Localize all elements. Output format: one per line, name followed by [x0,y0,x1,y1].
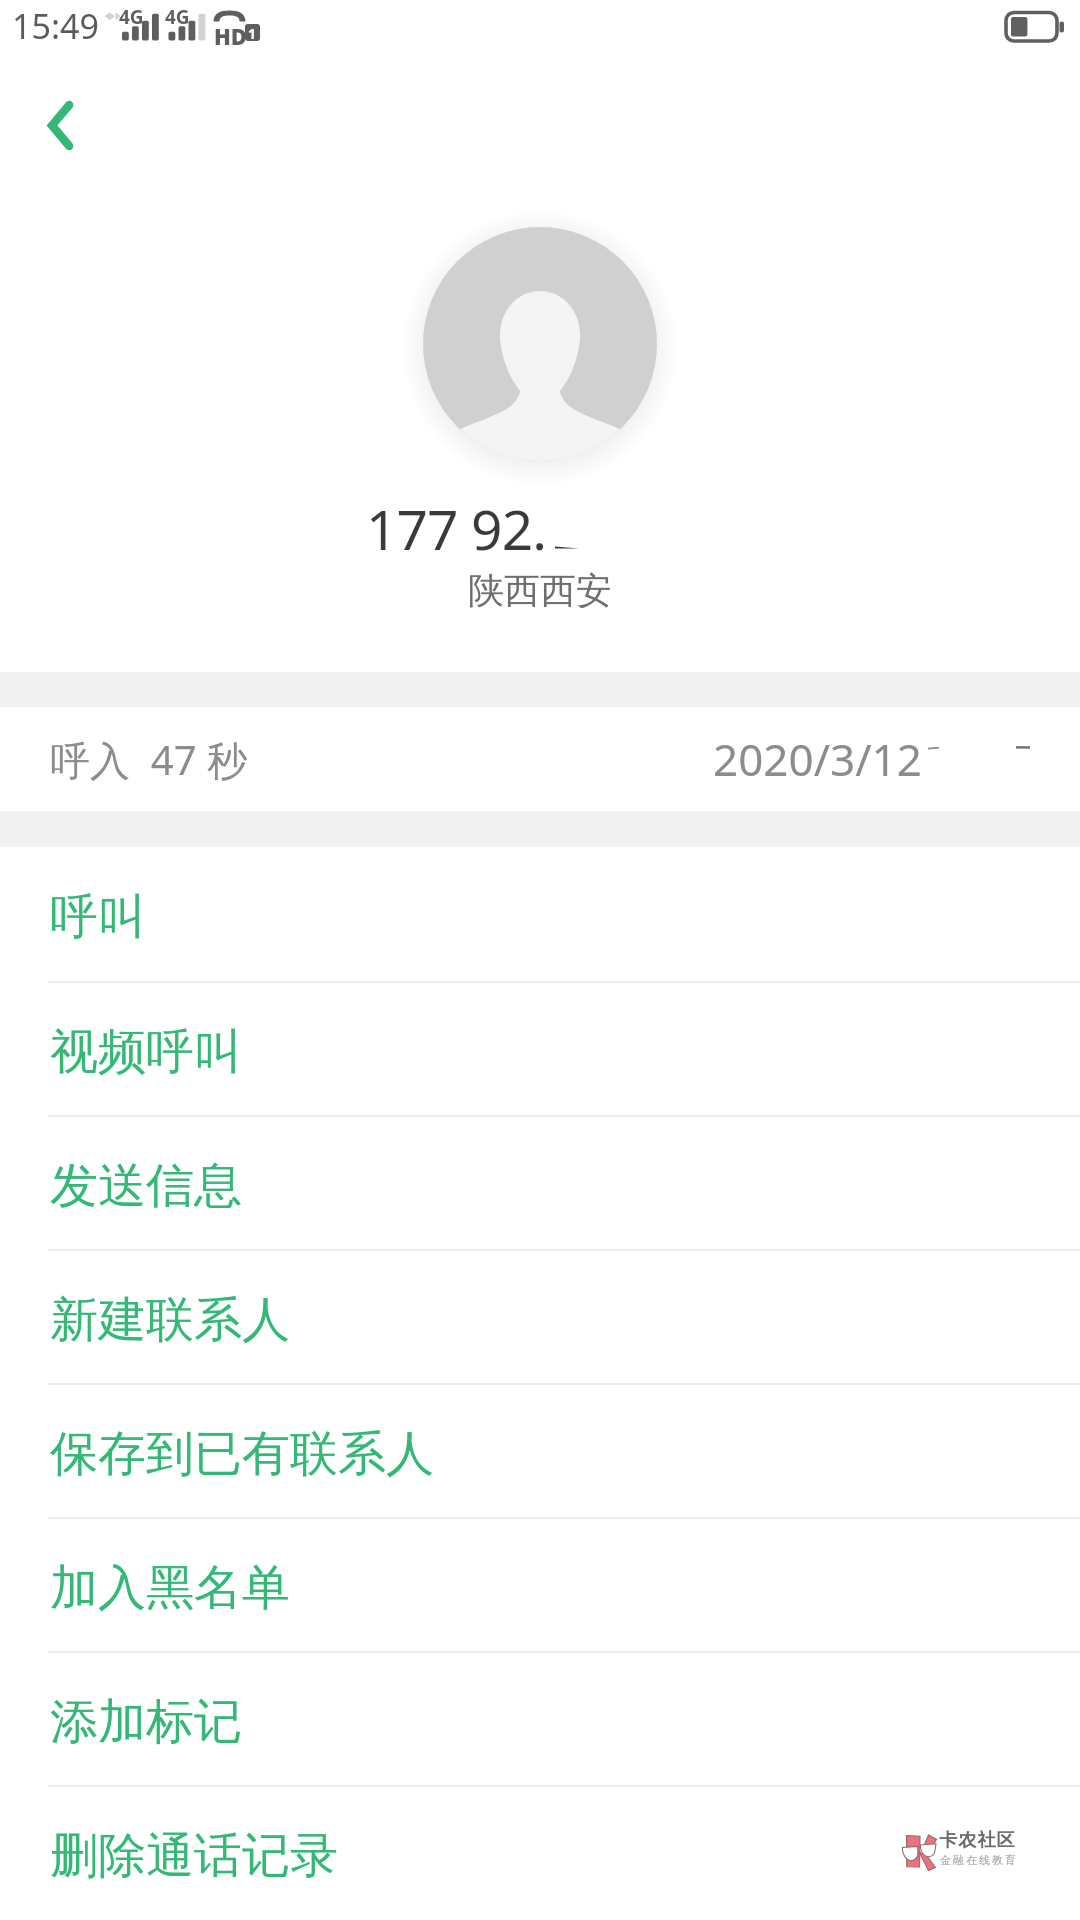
button[interactable]: 加入黑名单 [0,1519,1080,1651]
staticText: 添加标记 [50,1692,242,1752]
staticText: 发送信息 [50,1156,242,1216]
staticText: HD [214,21,248,51]
staticText: 陕西西安 [468,568,612,613]
staticText: 呼入 47 秒 [50,732,247,787]
staticText: 15:49 [12,3,99,49]
button[interactable]: 新建联系人 [0,1251,1080,1383]
staticText: 保存到已有联系人 [50,1424,434,1484]
staticText: 视频呼叫 [50,1022,242,1082]
button[interactable]: 添加标记 [0,1653,1080,1785]
button[interactable]: Back [8,82,96,170]
button[interactable]: 删除通话记录 [0,1787,1080,1919]
button[interactable]: 呼叫 [0,847,1080,981]
staticText: 金融在线教育 [939,1853,1017,1867]
staticText: 呼叫 [50,887,146,947]
button[interactable]: 保存到已有联系人 [0,1385,1080,1517]
staticText: 4G [119,4,144,30]
staticText: 卡农社区 [939,1829,1016,1852]
button[interactable]: 视频呼叫 [0,983,1080,1115]
staticText: 2020/3/12 [713,729,922,789]
staticText: 177 92. [366,491,547,566]
staticText: 1 [248,24,257,41]
staticText: 新建联系人 [50,1290,290,1350]
button[interactable]: 呼入 47 秒 [0,707,1080,811]
button[interactable]: 发送信息 [0,1117,1080,1249]
staticText: 4G [165,4,190,30]
staticText: 加入黑名单 [50,1558,290,1618]
staticText: 删除通话记录 [50,1826,338,1886]
